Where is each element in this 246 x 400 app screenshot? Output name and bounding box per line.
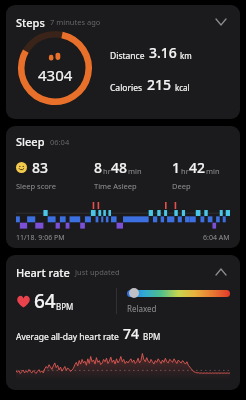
staticText: 83 bbox=[32, 158, 49, 177]
staticText: Relaxed bbox=[127, 303, 157, 314]
staticText: Average all-day heart rate bbox=[16, 331, 119, 343]
staticText: 1 bbox=[172, 158, 181, 177]
staticText: Just updated bbox=[75, 267, 120, 277]
staticText: Deep bbox=[172, 181, 191, 191]
staticText: Heart rate bbox=[16, 265, 70, 280]
staticText: 06:04 bbox=[50, 137, 70, 147]
staticText: 7 minutes ago bbox=[50, 17, 101, 27]
staticText: BPM bbox=[143, 331, 161, 342]
staticText: km bbox=[180, 50, 192, 61]
staticText: Sleep bbox=[16, 134, 45, 149]
staticText: 6:04 AM bbox=[203, 233, 230, 240]
staticText: 215 bbox=[147, 75, 172, 94]
staticText: Time Asleep bbox=[94, 181, 137, 191]
staticText: 48 bbox=[111, 158, 128, 177]
staticText: 8 bbox=[94, 158, 103, 177]
staticText: Calories bbox=[110, 82, 143, 94]
staticText: hr bbox=[181, 166, 189, 176]
staticText: min bbox=[128, 166, 142, 176]
button[interactable]: Steps bbox=[6, 5, 240, 119]
button[interactable]: Collapse bbox=[212, 263, 230, 281]
staticText: Sleep score bbox=[16, 181, 56, 191]
staticText: min bbox=[206, 166, 220, 176]
staticText: kcal bbox=[175, 82, 190, 93]
staticText: Steps bbox=[16, 15, 45, 30]
staticText: 3.16 bbox=[149, 43, 177, 62]
staticText: 11/18, 9:06 PM bbox=[16, 233, 65, 240]
staticText: 42 bbox=[189, 158, 206, 177]
staticText: 64 bbox=[34, 288, 56, 314]
staticText: 74 bbox=[123, 324, 140, 343]
staticText: Distance bbox=[110, 50, 145, 62]
staticText: 4304 bbox=[38, 65, 73, 85]
button[interactable]: Sleep bbox=[6, 126, 240, 248]
button[interactable]: Heart rate bbox=[6, 255, 240, 390]
staticText: hr bbox=[103, 166, 111, 176]
staticText: BPM bbox=[56, 301, 74, 312]
button[interactable]: Expand bbox=[212, 13, 230, 31]
